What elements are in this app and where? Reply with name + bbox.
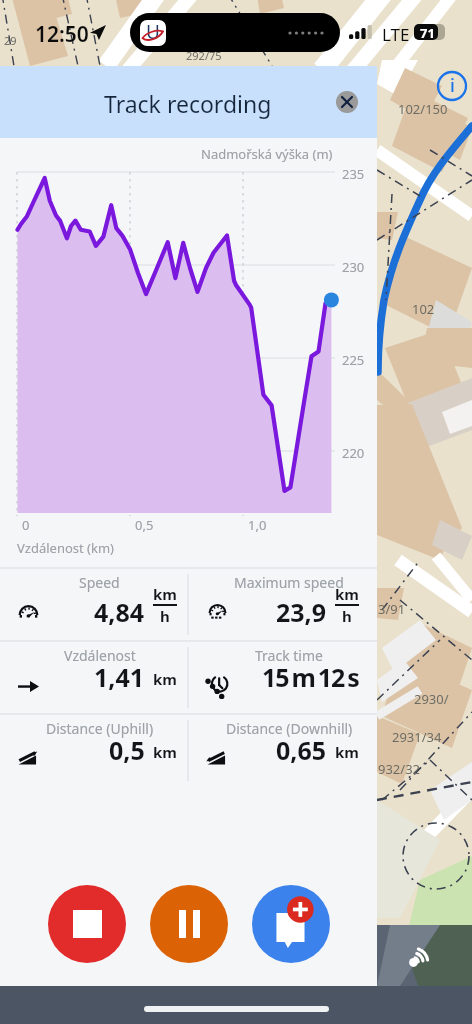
staticText: 1,0 (248, 516, 267, 534)
staticText: Distance (Downhill) (226, 719, 353, 738)
staticText: km (335, 584, 359, 604)
staticText: 225 (342, 351, 365, 369)
staticText: km (153, 669, 177, 689)
button[interactable]: Stop recording (48, 885, 126, 963)
staticText: 0,5 (135, 516, 154, 534)
staticText: h (342, 606, 352, 626)
staticText: 102 (412, 300, 435, 318)
staticText: 2931/34 (392, 728, 442, 746)
staticText: U (146, 20, 160, 45)
button[interactable]: Distance (Downhill) (189, 715, 377, 786)
button[interactable]: Maximum speed (189, 569, 377, 640)
staticText: 3/91 (378, 600, 406, 618)
staticText: Nadmořská výška (m) (201, 145, 333, 163)
staticText: 230 (342, 258, 365, 276)
button[interactable]: Speed (0, 569, 187, 640)
button[interactable]: Map info (436, 70, 468, 102)
staticText: i (450, 73, 455, 98)
button[interactable]: Track time (189, 642, 377, 713)
staticText: 235 (342, 165, 365, 183)
staticText: 29 (4, 33, 17, 48)
staticText: 1,41 (94, 660, 145, 694)
staticText: 0 (22, 516, 30, 534)
staticText: 932/32 (378, 760, 421, 778)
staticText: Distance (Uphill) (46, 719, 154, 738)
staticText: 4,84 (94, 595, 145, 629)
staticText: km (153, 742, 177, 762)
button[interactable]: Vzdálenost (0, 642, 187, 713)
other: Satellite (404, 938, 438, 972)
staticText: 0,65 (276, 733, 327, 767)
staticText: 2930/ (414, 690, 449, 708)
button[interactable]: Distance (Uphill) (0, 715, 187, 786)
staticText: 15 m 12 s (262, 660, 359, 694)
staticText: 102/150 (398, 100, 448, 118)
staticText: 23,9 (276, 595, 327, 629)
staticText: Track time (255, 646, 323, 665)
staticText: 292/75 (186, 48, 222, 63)
button[interactable]: Close (336, 91, 358, 113)
staticText: Speed (79, 573, 120, 592)
staticText: km (153, 584, 177, 604)
staticText: h (160, 606, 170, 626)
staticText: km (335, 742, 359, 762)
staticText: Track recording (104, 88, 272, 119)
staticText: 12:50 (35, 20, 89, 49)
staticText: Vzdálenost (64, 646, 136, 665)
staticText: 220 (342, 444, 365, 462)
staticText: LTE (382, 23, 410, 46)
staticText: Vzdálenost (km) (17, 539, 114, 557)
button[interactable]: Add note (252, 885, 330, 963)
staticText: 71 (420, 24, 435, 40)
staticText: 0,5 (109, 733, 145, 767)
staticText: Maximum speed (234, 573, 344, 592)
button[interactable]: Pause recording (150, 885, 228, 963)
